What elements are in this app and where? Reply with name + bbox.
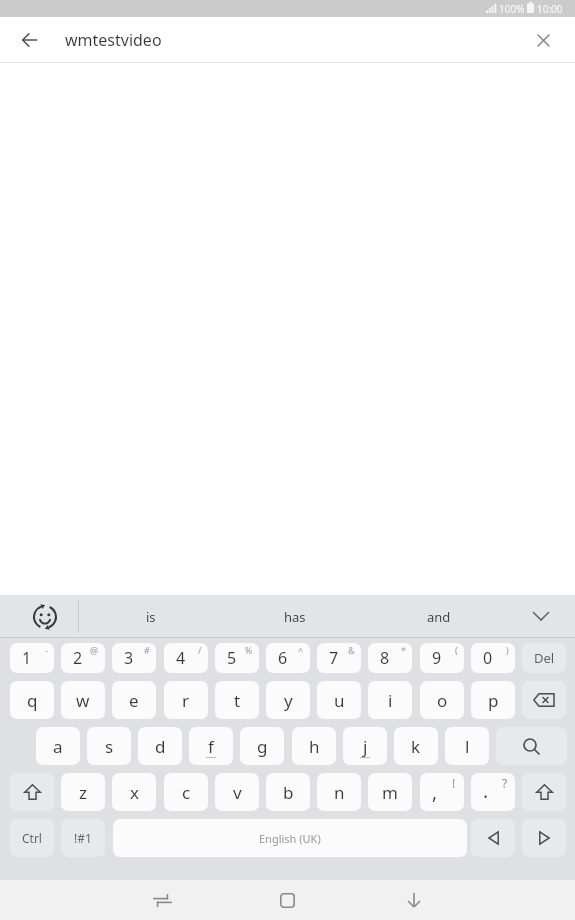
staticText: x <box>130 781 139 804</box>
staticText: & <box>348 644 355 656</box>
button[interactable]: u <box>317 681 361 719</box>
staticText: v <box>233 781 242 804</box>
button[interactable]: h <box>292 727 336 765</box>
button[interactable]: f <box>189 727 233 765</box>
button[interactable]: is <box>79 595 223 638</box>
staticText: ^ <box>298 644 304 656</box>
button[interactable]: i <box>368 681 412 719</box>
button[interactable] <box>496 727 567 765</box>
button[interactable]: 0 <box>471 643 515 673</box>
button[interactable]: 1 <box>10 643 54 673</box>
staticText: d <box>155 735 166 758</box>
button[interactable]: b <box>266 773 310 811</box>
button[interactable]: k <box>394 727 438 765</box>
button[interactable]: t <box>215 681 259 719</box>
button[interactable] <box>518 595 564 638</box>
staticText: 9 <box>432 647 442 669</box>
staticText: p <box>488 689 499 712</box>
button[interactable]: w <box>61 681 105 719</box>
staticText: e <box>129 689 139 712</box>
button[interactable]: 5 <box>215 643 259 673</box>
button[interactable]: n <box>317 773 361 811</box>
button[interactable]: and <box>367 595 511 638</box>
staticText: wmtestvideo <box>65 29 162 51</box>
button[interactable] <box>265 880 309 920</box>
staticText: 4 <box>176 647 186 669</box>
button[interactable]: 9 <box>420 643 464 673</box>
button[interactable] <box>10 773 54 811</box>
staticText: k <box>411 735 421 758</box>
button[interactable]: 2 <box>61 643 105 673</box>
button[interactable]: o <box>420 681 464 719</box>
button[interactable]: 6 <box>266 643 310 673</box>
button[interactable] <box>140 880 184 920</box>
button[interactable]: 7 <box>317 643 361 673</box>
staticText: f <box>208 735 214 758</box>
button[interactable] <box>22 595 68 638</box>
staticText: o <box>437 689 448 712</box>
button[interactable]: 8 <box>368 643 412 673</box>
staticText: Ctrl <box>22 830 42 846</box>
button[interactable]: s <box>87 727 131 765</box>
staticText: h <box>309 735 320 758</box>
staticText: 5 <box>227 647 237 669</box>
button[interactable]: l <box>445 727 489 765</box>
staticText: i <box>388 689 393 712</box>
button[interactable]: g <box>240 727 284 765</box>
staticText: j <box>363 735 368 758</box>
button[interactable]: English (UK) <box>113 819 467 857</box>
button[interactable] <box>471 819 515 857</box>
button[interactable]: has <box>223 595 367 638</box>
staticText: is <box>146 608 156 626</box>
button[interactable]: r <box>164 681 208 719</box>
staticText: 10:00 <box>537 2 563 16</box>
staticText: t <box>234 689 241 712</box>
button[interactable] <box>522 819 566 857</box>
button[interactable] <box>14 25 44 55</box>
button[interactable]: Del <box>522 643 566 673</box>
staticText: has <box>284 608 306 626</box>
button[interactable]: Ctrl <box>10 819 54 857</box>
button[interactable] <box>522 681 566 719</box>
button[interactable]: e <box>112 681 156 719</box>
button[interactable]: y <box>266 681 310 719</box>
staticText: . <box>483 778 489 804</box>
staticText: u <box>334 689 345 712</box>
button[interactable]: 4 <box>164 643 208 673</box>
staticText: , <box>432 779 438 805</box>
button[interactable]: v <box>215 773 259 811</box>
button[interactable]: x <box>112 773 156 811</box>
button[interactable]: p <box>471 681 515 719</box>
staticText: 100% <box>499 2 525 16</box>
button[interactable]: m <box>368 773 412 811</box>
staticText: c <box>182 781 191 804</box>
staticText: l <box>465 735 470 758</box>
button[interactable] <box>528 25 558 55</box>
staticText: 2 <box>73 647 83 669</box>
button[interactable]: q <box>10 681 54 719</box>
button[interactable]: , <box>420 773 464 811</box>
staticText: 1 <box>22 647 32 669</box>
staticText: 8 <box>380 647 390 669</box>
staticText: 3 <box>124 647 134 669</box>
staticText: a <box>53 735 63 758</box>
button[interactable]: z <box>61 773 105 811</box>
button[interactable]: a <box>36 727 80 765</box>
button[interactable] <box>392 880 436 920</box>
button[interactable] <box>522 773 566 811</box>
button[interactable]: 3 <box>112 643 156 673</box>
staticText: 0 <box>483 647 493 669</box>
staticText: ! <box>452 775 456 791</box>
button[interactable]: d <box>138 727 182 765</box>
button[interactable]: !#1 <box>61 819 105 857</box>
staticText: ? <box>502 775 508 791</box>
staticText: and <box>427 608 451 626</box>
button[interactable]: . <box>471 773 515 811</box>
staticText: Del <box>534 649 555 667</box>
staticText: * <box>401 644 406 656</box>
staticText: 6 <box>278 647 288 669</box>
staticText: g <box>257 735 268 758</box>
button[interactable]: j <box>343 727 387 765</box>
button[interactable]: c <box>164 773 208 811</box>
staticText: s <box>105 735 114 758</box>
